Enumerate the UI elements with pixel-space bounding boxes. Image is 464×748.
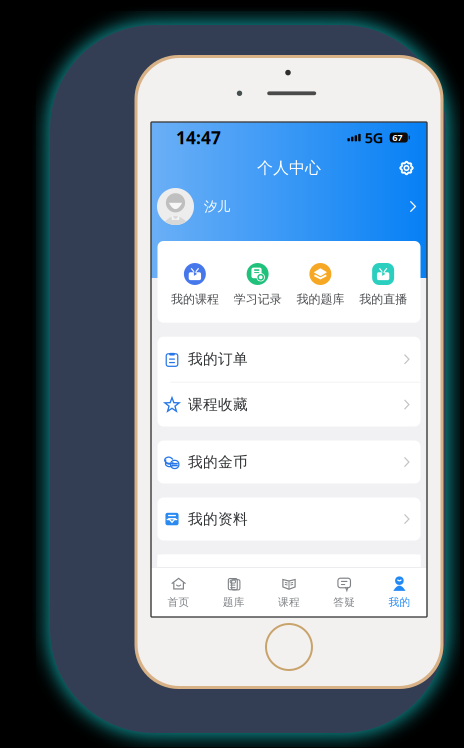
staticText: 我的题库 [296, 292, 344, 307]
button[interactable]: Settings [396, 157, 417, 178]
button[interactable]: 我的 [372, 571, 427, 613]
button[interactable]: 学习记录 [226, 263, 289, 307]
staticText: 首页 [168, 595, 190, 609]
button[interactable]: 课程 [261, 571, 317, 613]
staticText: 我的资料 [188, 510, 248, 528]
staticText: 课程 [278, 595, 300, 609]
staticText: 我的金币 [188, 453, 248, 471]
staticText: 5G [365, 128, 384, 147]
staticText: 题库 [223, 595, 245, 609]
button[interactable]: 答疑 [317, 571, 372, 613]
button[interactable]: 课程收藏 [157, 382, 420, 426]
staticText: 课程收藏 [188, 395, 248, 413]
staticText: 我的订单 [188, 350, 248, 368]
staticText: 我的课程 [171, 292, 219, 307]
staticText: 汐儿 [204, 198, 230, 215]
staticText: 14:47 [176, 126, 221, 149]
staticText: 个人中心 [257, 158, 321, 178]
staticText: 我的 [388, 595, 410, 609]
staticText: 67 [392, 131, 402, 144]
button[interactable]: 我的直播 [352, 263, 415, 307]
button[interactable]: 汐儿 [151, 183, 427, 230]
staticText: 学习记录 [234, 292, 282, 307]
staticText: 答疑 [333, 595, 355, 609]
staticText: 我的直播 [359, 292, 407, 307]
button[interactable]: 我的金币 [157, 440, 420, 483]
button[interactable]: 我的题库 [289, 263, 352, 307]
button[interactable]: 我的资料 [157, 497, 420, 540]
button[interactable]: 我的订单 [157, 337, 420, 382]
button[interactable]: 首页 [151, 571, 206, 613]
button[interactable]: 题库 [206, 571, 261, 613]
button[interactable]: 我的课程 [163, 263, 226, 307]
